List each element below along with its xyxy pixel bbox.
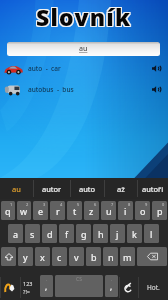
button[interactable]: d <box>42 224 57 243</box>
staticText: k <box>132 228 137 240</box>
staticText: Slovník <box>35 0 131 28</box>
staticText: t <box>73 205 77 217</box>
button[interactable]: p <box>152 201 167 220</box>
button[interactable]: b <box>86 247 101 266</box>
staticText: a <box>13 228 19 240</box>
staticText: Slovník <box>37 1 133 29</box>
button[interactable]: u <box>101 201 116 220</box>
staticText: f <box>65 228 69 240</box>
staticText: d <box>47 228 53 240</box>
staticText: b <box>91 251 97 263</box>
button[interactable]: Hot. <box>138 274 168 300</box>
button[interactable]: autoři <box>138 178 168 199</box>
staticText: 2 <box>26 202 29 207</box>
button[interactable]: q <box>1 201 15 220</box>
staticText: auto <box>79 184 96 194</box>
staticText: až <box>117 184 125 194</box>
staticText: y <box>23 251 28 263</box>
button[interactable]: z <box>84 201 99 220</box>
button[interactable]: au <box>0 178 33 199</box>
staticText: 1 <box>10 202 13 207</box>
staticText: autobus - bus <box>28 85 74 94</box>
staticText: x <box>40 251 45 263</box>
button[interactable]: l <box>144 224 159 243</box>
staticText: u <box>106 205 112 217</box>
staticText: z <box>89 205 94 217</box>
button[interactable]: Backspace <box>137 247 167 266</box>
staticText: n <box>108 251 114 263</box>
staticText: 6 <box>94 202 97 207</box>
button[interactable]: v <box>69 247 84 266</box>
button[interactable]: až <box>105 178 137 199</box>
button[interactable]: s <box>25 224 40 243</box>
button[interactable]: f <box>59 224 74 243</box>
staticText: auto - car <box>28 64 61 73</box>
staticText: , <box>110 281 113 292</box>
button[interactable]: x <box>35 247 50 266</box>
staticText: CS <box>76 276 82 283</box>
staticText: l <box>150 228 153 240</box>
button[interactable]: w <box>17 201 31 220</box>
staticText: Slovník <box>36 0 132 28</box>
button[interactable]: Gesture typing <box>0 274 20 300</box>
button[interactable]: g <box>76 224 91 243</box>
staticText: 0 <box>162 202 165 207</box>
button[interactable]: r <box>50 201 65 220</box>
staticText: Slovník <box>36 1 132 29</box>
button[interactable]: k <box>127 224 142 243</box>
staticText: 8 <box>128 202 131 207</box>
button[interactable]: o <box>135 201 150 220</box>
staticText: m <box>123 251 132 263</box>
button[interactable]: m <box>120 247 135 266</box>
button[interactable]: h <box>93 224 108 243</box>
staticText: e <box>38 205 44 217</box>
staticText: i <box>124 205 127 217</box>
button[interactable]: i <box>118 201 133 220</box>
staticText: o <box>140 205 146 217</box>
staticText: 5 <box>77 202 80 207</box>
button[interactable]: au <box>7 42 160 56</box>
staticText: au <box>79 44 88 54</box>
staticText: 7 <box>111 202 114 207</box>
staticText: v <box>74 251 79 263</box>
button[interactable]: t <box>67 201 82 220</box>
staticText: 4 <box>60 202 63 207</box>
staticText: j <box>116 228 119 240</box>
button[interactable]: Punctuation <box>40 275 53 297</box>
button[interactable]: c <box>52 247 67 266</box>
button[interactable]: n <box>103 247 118 266</box>
staticText: q <box>5 205 11 217</box>
staticText: Slovník <box>37 0 133 28</box>
button[interactable]: autor <box>34 178 70 199</box>
staticText: r <box>56 205 60 217</box>
staticText: , <box>45 281 48 292</box>
staticText: autor <box>42 184 62 194</box>
button[interactable]: auto - car <box>0 61 168 75</box>
button[interactable]: autobus - bus <box>0 82 168 96</box>
button[interactable]: Play pronunciation <box>149 61 163 75</box>
staticText: w <box>20 205 28 217</box>
staticText: p <box>157 205 163 217</box>
button[interactable]: Punctuation <box>105 275 118 297</box>
staticText: Slovník <box>35 2 131 30</box>
button[interactable]: Emoji <box>119 274 138 300</box>
button[interactable]: Shift <box>1 247 16 266</box>
button[interactable]: e <box>33 201 48 220</box>
staticText: g <box>81 228 87 240</box>
button[interactable]: auto <box>71 178 104 199</box>
staticText: 9 <box>145 202 148 207</box>
button[interactable]: Play pronunciation <box>149 82 163 96</box>
staticText: 123 <box>23 280 33 287</box>
staticText: . <box>46 276 48 283</box>
staticText: au <box>12 184 21 194</box>
button[interactable]: a <box>8 224 23 243</box>
button[interactable]: y <box>18 247 33 266</box>
staticText: . <box>111 276 113 283</box>
staticText: ?!= <box>23 288 31 295</box>
button[interactable]: Numbers and symbols <box>20 274 39 300</box>
button[interactable]: j <box>110 224 125 243</box>
staticText: c <box>57 251 62 263</box>
staticText: s <box>30 228 35 240</box>
staticText: Slovník <box>35 1 131 29</box>
